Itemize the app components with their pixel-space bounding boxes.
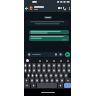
button[interactable] — [55, 78, 59, 83]
button[interactable] — [50, 78, 54, 83]
button[interactable] — [67, 63, 71, 68]
button[interactable] — [54, 73, 58, 78]
button[interactable]: Enter — [64, 83, 71, 88]
button[interactable] — [28, 68, 31, 73]
button[interactable]: More options — [67, 4, 71, 12]
button[interactable] — [42, 68, 46, 73]
button[interactable] — [52, 68, 56, 73]
button[interactable] — [59, 73, 63, 78]
button[interactable] — [42, 63, 46, 68]
button[interactable] — [60, 78, 64, 83]
button[interactable] — [45, 78, 49, 83]
button[interactable] — [24, 68, 27, 73]
button[interactable] — [30, 78, 34, 83]
button[interactable] — [24, 63, 27, 68]
button[interactable] — [31, 73, 34, 78]
button[interactable] — [39, 73, 43, 78]
button[interactable] — [32, 63, 36, 68]
button[interactable] — [62, 63, 66, 68]
button[interactable] — [29, 30, 69, 34]
button[interactable] — [29, 35, 69, 41]
button[interactable] — [49, 73, 53, 78]
button[interactable] — [35, 73, 38, 78]
button[interactable] — [37, 68, 41, 73]
button[interactable] — [47, 68, 51, 73]
button[interactable] — [57, 63, 61, 68]
button[interactable] — [35, 78, 39, 83]
button[interactable]: Send — [65, 52, 70, 57]
button[interactable] — [28, 63, 31, 68]
button[interactable] — [40, 78, 44, 83]
button[interactable]: Shift — [24, 78, 29, 83]
button[interactable]: Call — [62, 4, 67, 12]
button[interactable] — [44, 73, 48, 78]
button[interactable]: Video call — [57, 4, 62, 12]
button[interactable] — [27, 73, 30, 78]
button[interactable]: Comma — [31, 83, 36, 88]
button[interactable] — [26, 20, 69, 26]
button[interactable] — [44, 16, 52, 19]
button[interactable] — [57, 68, 61, 73]
button[interactable]: Symbols — [24, 83, 30, 88]
button[interactable]: Period — [58, 83, 63, 88]
button[interactable] — [37, 63, 41, 68]
button[interactable] — [64, 73, 68, 78]
button[interactable] — [47, 63, 51, 68]
button[interactable] — [32, 68, 36, 73]
button[interactable] — [62, 68, 66, 73]
button[interactable] — [67, 68, 71, 73]
button[interactable] — [26, 52, 64, 57]
button[interactable] — [52, 63, 56, 68]
button[interactable]: Google — [26, 59, 29, 62]
button[interactable]: Backspace — [65, 78, 71, 83]
button[interactable]: Back — [24, 4, 29, 12]
